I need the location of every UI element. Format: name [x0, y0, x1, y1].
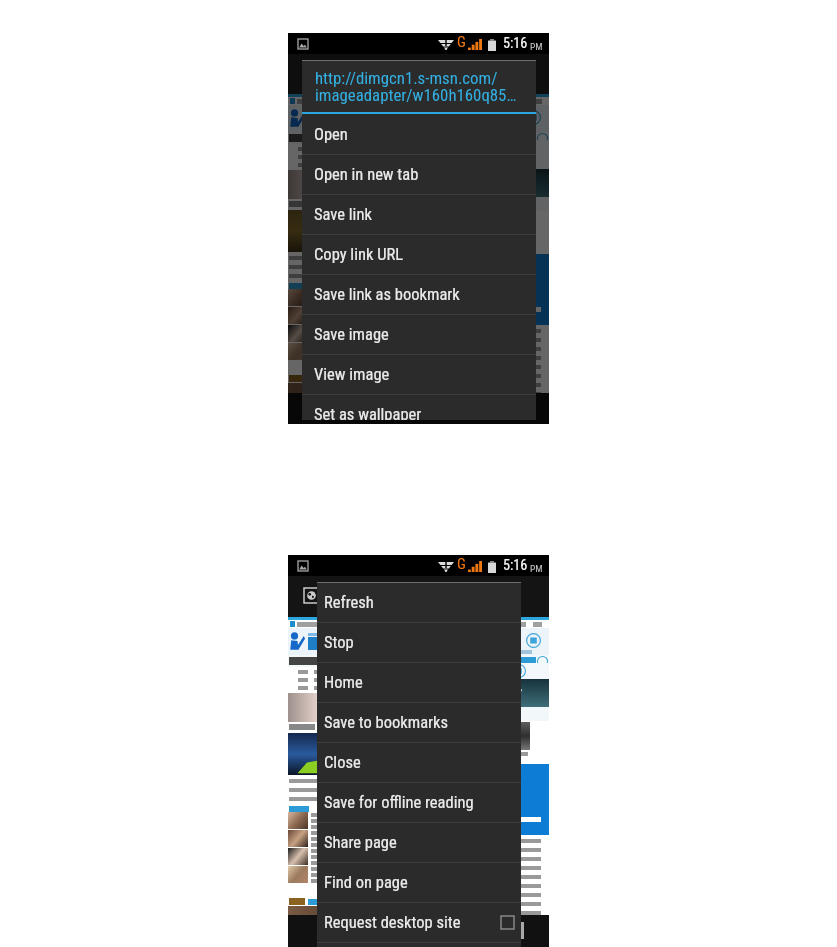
button[interactable]: Share page — [317, 823, 521, 862]
button[interactable]: Save link as bookmark — [302, 275, 536, 314]
button[interactable]: Save for offline reading — [317, 783, 521, 822]
button[interactable]: Home — [317, 663, 521, 702]
staticText: Save image — [314, 325, 389, 344]
staticText: Set as wallpaper — [314, 405, 422, 420]
staticText: Save link — [314, 205, 372, 224]
button[interactable]: Find on page — [317, 863, 521, 902]
staticText: Stop — [324, 633, 354, 652]
staticText: Home — [324, 673, 363, 692]
button[interactable]: Open — [302, 114, 536, 154]
staticText: Find on page — [324, 873, 408, 892]
staticText: Save to bookmarks — [324, 713, 449, 732]
button[interactable]: Stop — [317, 623, 521, 662]
button[interactable]: Refresh — [317, 582, 521, 622]
button[interactable]: Save link — [302, 195, 536, 234]
staticText: Open — [314, 125, 348, 144]
staticText: Close — [324, 753, 361, 772]
button[interactable]: Save to bookmarks — [317, 703, 521, 742]
staticText: Request desktop site — [324, 913, 461, 932]
staticText: Open in new tab — [314, 165, 419, 184]
staticText: G — [457, 33, 466, 51]
staticText: PM — [530, 563, 543, 574]
button[interactable]: Request desktop site — [317, 903, 521, 942]
other: Screenshot saved — [298, 561, 308, 571]
staticText: Refresh — [324, 593, 374, 612]
staticText: View image — [314, 365, 390, 384]
other: Screenshot saved — [298, 39, 308, 49]
staticText: EF — [505, 684, 522, 703]
staticText: Save for offline reading — [324, 793, 474, 812]
staticText: Share page — [324, 833, 397, 852]
staticText: Copy link URL — [314, 245, 404, 264]
staticText: 5:16 — [503, 35, 528, 52]
staticText: http://dimgcn1.s-msn.com/ imageadapter/w… — [315, 68, 517, 105]
button[interactable]: Open in new tab — [302, 155, 536, 194]
staticText: Save link as bookmark — [314, 285, 460, 304]
button[interactable]: Set as wallpaper — [302, 395, 536, 420]
button[interactable]: Close — [317, 743, 521, 782]
button[interactable]: Save image — [302, 315, 536, 354]
staticText: 5:16 — [503, 557, 528, 574]
button[interactable]: Page info — [304, 588, 319, 603]
button[interactable]: Copy link URL — [302, 235, 536, 274]
staticText: PM — [530, 41, 543, 52]
button[interactable]: View image — [302, 355, 536, 394]
staticText: G — [457, 555, 466, 573]
